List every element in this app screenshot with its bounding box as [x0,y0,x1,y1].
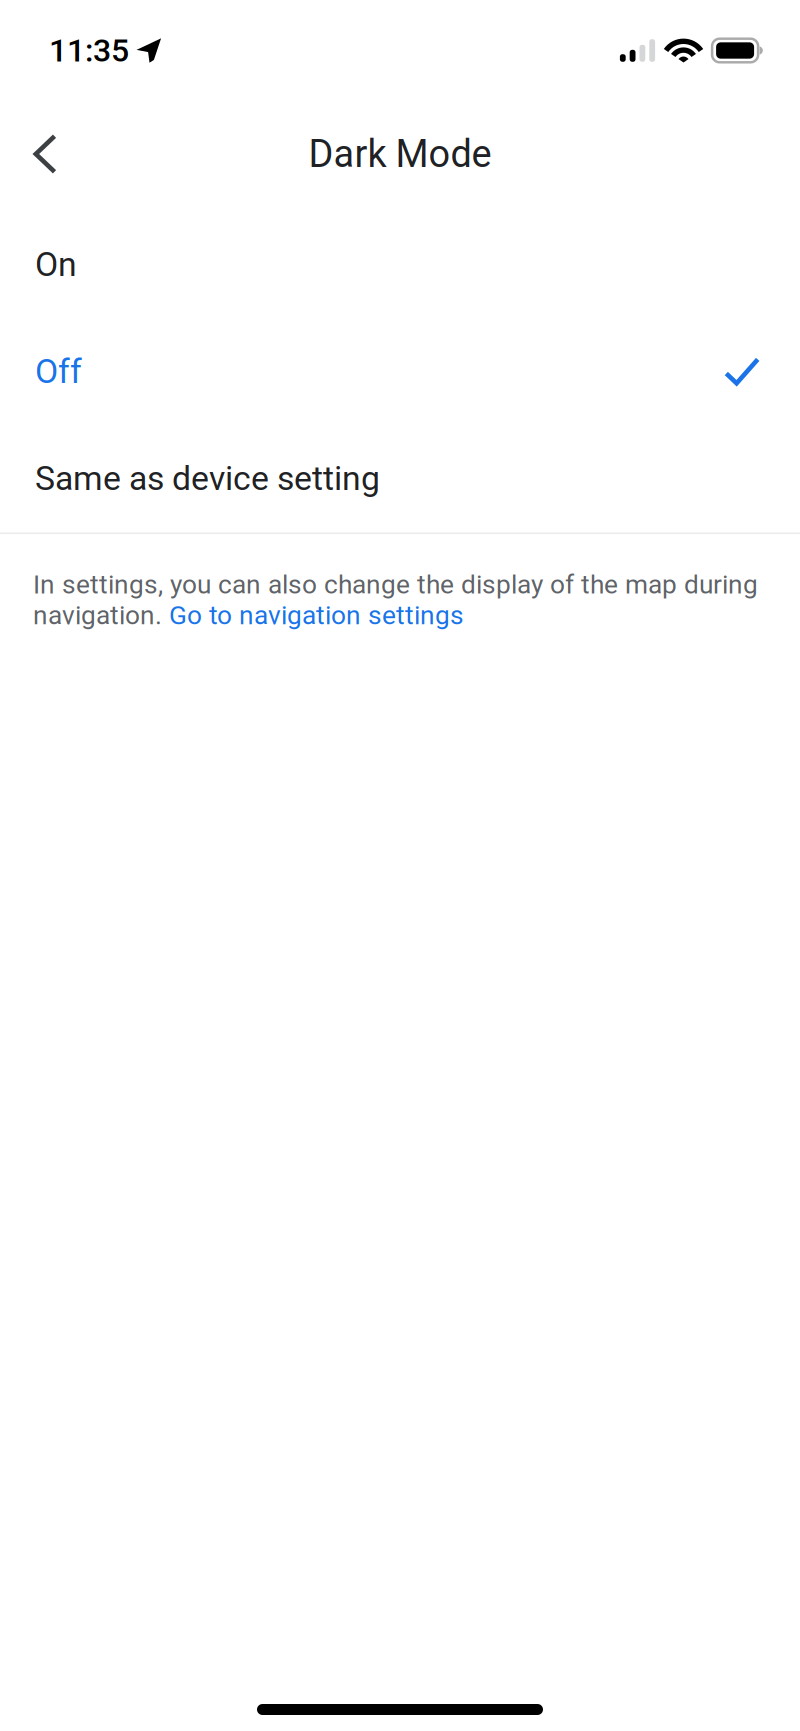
staticText: On [35,245,77,284]
button[interactable]: Off [0,318,800,425]
button[interactable]: Same as device setting [0,425,800,532]
button[interactable]: Back [10,119,80,189]
staticText: Go to navigation settings [169,600,464,631]
button[interactable]: On [0,211,800,318]
staticText: Off [35,352,82,391]
button[interactable]: Go to navigation settings [169,600,464,631]
staticText: navigation. [33,600,169,631]
staticText: Dark Mode [308,132,491,176]
staticText: Same as device setting [35,459,380,498]
staticText: 11:35 [49,32,129,69]
staticText: In settings, you can also change the dis… [33,569,758,600]
